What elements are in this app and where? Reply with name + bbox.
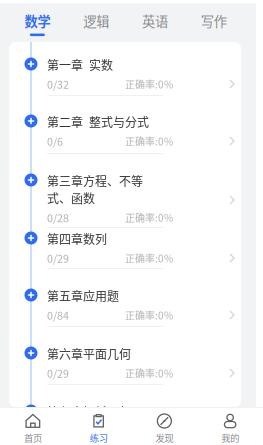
staticText: 0/28 [47, 210, 69, 225]
staticText: 第二章 整式与分式 [47, 113, 149, 130]
staticText: 0/29 [47, 250, 69, 266]
button[interactable]: 我的 [197, 407, 263, 445]
staticText: 第五章应用题 [47, 287, 119, 304]
button[interactable]: 首页 [0, 407, 66, 445]
staticText: 正确率:0% [125, 424, 173, 438]
staticText: 第三章方程、不等式、函数 [47, 172, 143, 207]
button[interactable]: 逻辑 [67, 3, 126, 42]
button[interactable]: 英语 [125, 3, 184, 42]
button[interactable]: 写作 [184, 3, 243, 42]
button[interactable]: 第七章解析几何 [9, 385, 241, 443]
button[interactable]: 数学 [8, 3, 67, 42]
button[interactable]: 第四章数列 [9, 228, 241, 269]
staticText: 我的 [221, 431, 239, 444]
staticText: 第一章 实数 [47, 56, 113, 73]
staticText: 练习 [90, 431, 108, 444]
staticText: 0/29 [47, 365, 69, 381]
staticText: 第七章解析几何 [47, 403, 131, 420]
staticText: 正确率:0% [125, 308, 173, 322]
staticText: 英语 [142, 11, 168, 30]
staticText: 写作 [201, 11, 227, 30]
staticText: 正确率:0% [125, 251, 173, 265]
staticText: 正确率:0% [125, 366, 173, 380]
button[interactable]: 发现 [131, 407, 197, 445]
staticText: 第六章平面几何 [47, 345, 131, 362]
button[interactable]: 第二章 整式与分式 [9, 96, 241, 154]
staticText: 正确率:0% [125, 134, 173, 148]
staticText: 0/84 [47, 307, 69, 323]
button[interactable]: 第三章方程、不等式、函数 [9, 154, 241, 228]
staticText: 发现 [155, 431, 173, 444]
button[interactable]: 第五章应用题 [9, 269, 241, 327]
staticText: 逻辑 [83, 11, 109, 30]
staticText: 数学 [24, 11, 50, 30]
button[interactable]: 第一章 实数 [9, 42, 241, 96]
staticText: 正确率:0% [125, 77, 173, 91]
button[interactable]: 第六章平面几何 [9, 327, 241, 385]
staticText: 0/32 [47, 76, 69, 92]
button[interactable]: 练习 [66, 407, 132, 445]
staticText: 第四章数列 [47, 230, 107, 247]
staticText: 0/6 [47, 133, 63, 149]
staticText: 正确率:0% [125, 210, 173, 225]
staticText: 首页 [24, 431, 42, 444]
